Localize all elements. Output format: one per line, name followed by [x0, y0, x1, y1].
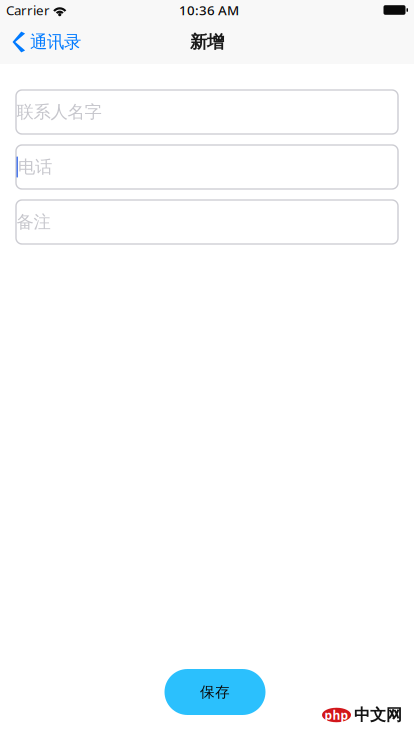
button[interactable]: 通讯录 — [0, 20, 89, 64]
staticText: Carrier — [6, 1, 50, 19]
staticText: 中文网 — [354, 705, 402, 725]
staticText: 新增 — [190, 31, 224, 53]
button[interactable]: 联系人名字 — [16, 90, 398, 134]
button[interactable]: 保存 — [164, 669, 265, 715]
staticText: 10:36 AM — [179, 1, 239, 19]
staticText: php — [324, 707, 348, 723]
staticText: 联系人名字 — [16, 101, 101, 123]
staticText: 保存 — [200, 683, 230, 701]
button[interactable]: 电话 — [16, 145, 398, 189]
staticText: 通讯录 — [30, 31, 81, 53]
button[interactable]: 备注 — [16, 200, 398, 244]
staticText: 备注 — [16, 211, 50, 233]
staticText: 电话 — [18, 156, 52, 178]
